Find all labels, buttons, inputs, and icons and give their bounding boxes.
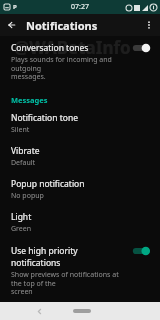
- staticText: Show previews of notifications at the to…: [11, 270, 125, 296]
- button[interactable]: Toggle on: [131, 245, 151, 257]
- button[interactable]: Vibrate: [0, 140, 160, 173]
- button[interactable]: Popup notification: [0, 173, 160, 206]
- staticText: Notifications: [26, 18, 98, 33]
- staticText: No popup: [11, 191, 44, 201]
- button[interactable]: Notification tone: [0, 107, 160, 140]
- button[interactable]: Conversation tones: [0, 36, 160, 87]
- button[interactable]: More options: [138, 14, 160, 36]
- staticText: Plays sounds for incoming and outgoing m…: [11, 55, 125, 81]
- button[interactable]: Toggle off: [131, 42, 151, 54]
- button[interactable]: Light: [0, 206, 160, 239]
- staticText: Silent: [11, 125, 30, 135]
- staticText: @WABetaInfo: [14, 36, 131, 59]
- button[interactable]: Back: [32, 304, 46, 318]
- button[interactable]: Home: [73, 309, 91, 313]
- staticText: Green: [11, 224, 32, 234]
- staticText: 07:27: [71, 2, 89, 12]
- button[interactable]: Back: [0, 14, 22, 36]
- staticText: Use high priority notifications: [11, 245, 125, 269]
- staticText: Light: [11, 211, 32, 223]
- button[interactable]: Use high priority notifications: [0, 239, 160, 302]
- staticText: P: [13, 3, 17, 11]
- staticText: Popup notification: [11, 178, 85, 190]
- staticText: Vibrate: [11, 145, 40, 157]
- staticText: Default: [11, 158, 36, 168]
- staticText: Messages: [11, 95, 160, 105]
- staticText: Notification tone: [11, 112, 78, 124]
- staticText: Conversation tones: [11, 42, 89, 54]
